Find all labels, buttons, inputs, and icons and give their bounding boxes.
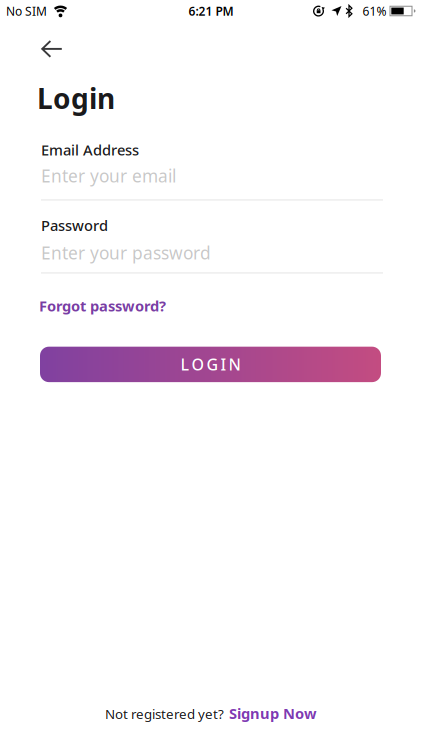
button[interactable]: Email Address text field	[41, 140, 383, 201]
staticText: 6:21 PM	[188, 3, 233, 19]
staticText: Email Address	[41, 140, 139, 160]
staticText: Not registered yet?	[105, 705, 224, 723]
button[interactable]: L O G I N	[40, 347, 381, 382]
button[interactable]: Back	[0, 22, 63, 58]
button[interactable]: Signup Now	[229, 703, 317, 723]
button[interactable]: Password text field	[41, 216, 383, 274]
staticText: Forgot password?	[39, 296, 166, 316]
staticText: No SIM	[6, 3, 47, 19]
staticText: Login	[37, 79, 115, 117]
staticText: Signup Now	[229, 703, 317, 723]
staticText: Password	[41, 216, 108, 235]
staticText: Enter your email	[41, 164, 176, 187]
staticText: L O G I N	[180, 354, 240, 375]
button[interactable]: Forgot password?	[39, 296, 166, 316]
staticText: Enter your password	[41, 241, 211, 264]
staticText: 61%	[362, 3, 386, 19]
